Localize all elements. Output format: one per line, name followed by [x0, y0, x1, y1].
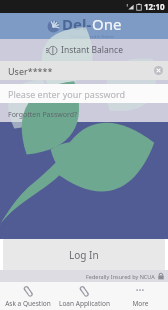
staticText: More [132, 299, 149, 308]
button[interactable]: Instant Balance [40, 42, 129, 58]
button[interactable]: Log In [3, 239, 165, 270]
staticText: Federally Insured by NCUA [86, 273, 155, 280]
staticText: Instant Balance [61, 44, 123, 56]
button[interactable]: More [112, 282, 168, 310]
staticText: Forgotten Password? [8, 110, 78, 120]
staticText: Del- [62, 14, 92, 34]
button[interactable]: Ask a Question [0, 282, 56, 310]
button[interactable]: Loan Application [56, 282, 112, 310]
button[interactable]: User***** [0, 61, 168, 80]
staticText: Please enter your password [8, 88, 126, 100]
button[interactable]: Clear username [149, 61, 168, 80]
button[interactable]: Forgotten Password? [6, 108, 80, 122]
staticText: Loan Application [59, 299, 110, 308]
button[interactable]: Please enter your password [0, 84, 168, 103]
staticText: Log In [69, 248, 99, 262]
staticText: 12:10 [144, 1, 165, 12]
staticText: User***** [8, 65, 149, 77]
staticText: Federal Credit Union [70, 34, 114, 39]
staticText: One [92, 14, 122, 34]
staticText: Ask a Question [5, 299, 51, 308]
